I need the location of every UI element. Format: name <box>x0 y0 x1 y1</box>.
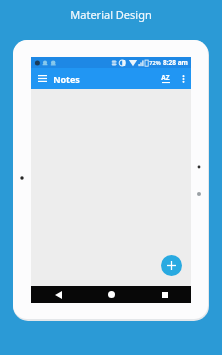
staticText: AZ <box>161 73 170 82</box>
staticText: 72% <box>149 59 161 66</box>
button[interactable]: Home <box>85 286 138 303</box>
button[interactable]: Open navigation drawer <box>31 68 53 89</box>
button[interactable]: Add note <box>161 255 182 276</box>
button[interactable]: More options <box>175 68 191 89</box>
button[interactable]: Back <box>31 286 85 303</box>
staticText: Notes <box>53 73 80 85</box>
button[interactable]: Sort alphabetically <box>156 68 175 89</box>
staticText: Material Design <box>70 7 152 22</box>
staticText: 8:28 am <box>163 58 188 67</box>
button[interactable]: Recent apps <box>138 286 191 303</box>
